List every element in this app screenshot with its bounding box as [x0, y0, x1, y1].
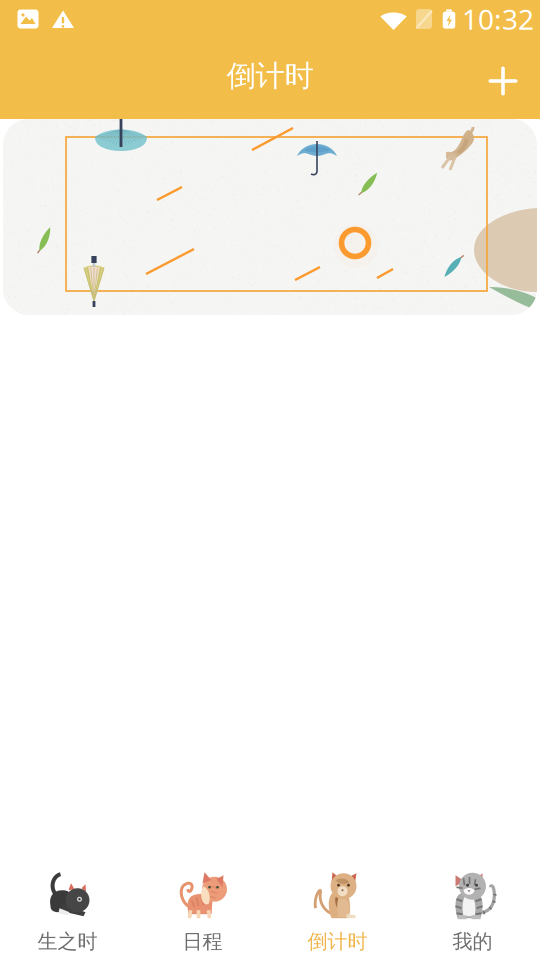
staticText: 倒计时: [307, 929, 367, 954]
staticText: 我的: [452, 929, 492, 954]
staticText: 倒计时: [226, 58, 313, 94]
button[interactable]: 我的: [405, 864, 540, 960]
button[interactable]: Add countdown: [470, 48, 536, 114]
staticText: 生之时: [37, 929, 97, 954]
button[interactable]: 生之时: [0, 864, 135, 960]
staticText: 10:32: [462, 0, 534, 38]
button[interactable]: 日程: [135, 864, 270, 960]
staticText: 日程: [182, 929, 222, 954]
button[interactable]: 倒计时: [270, 864, 405, 960]
